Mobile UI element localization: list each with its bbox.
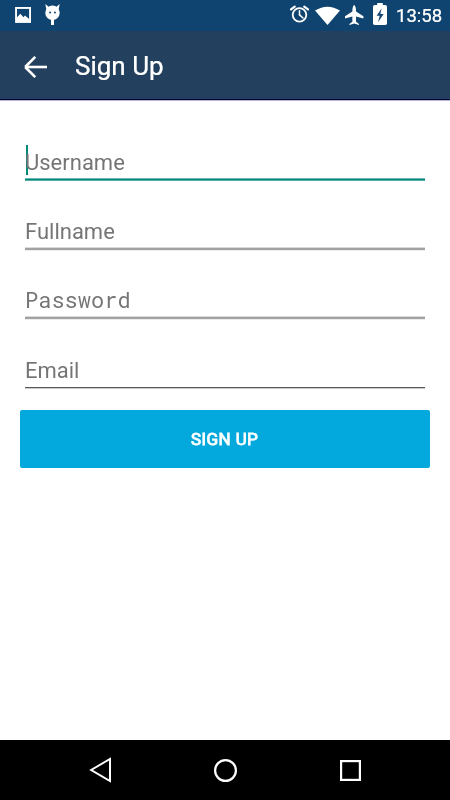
staticText: 13:58 <box>396 5 443 27</box>
button[interactable]: Back <box>11 43 59 91</box>
staticText: Password <box>25 285 131 314</box>
button[interactable]: SIGN UP <box>20 410 430 468</box>
staticText: Fullname <box>25 219 115 245</box>
button[interactable]: Password <box>0 259 450 328</box>
staticText: Email <box>25 358 80 384</box>
button[interactable]: Back <box>76 746 124 794</box>
button[interactable]: Home <box>201 746 249 794</box>
button[interactable]: Recent apps <box>326 746 374 794</box>
staticText: Username <box>25 150 125 176</box>
button[interactable]: Fullname <box>0 190 450 259</box>
button[interactable]: Username <box>0 121 450 190</box>
staticText: Sign Up <box>75 51 164 81</box>
button[interactable]: Email <box>0 329 450 398</box>
staticText: SIGN UP <box>191 429 259 449</box>
